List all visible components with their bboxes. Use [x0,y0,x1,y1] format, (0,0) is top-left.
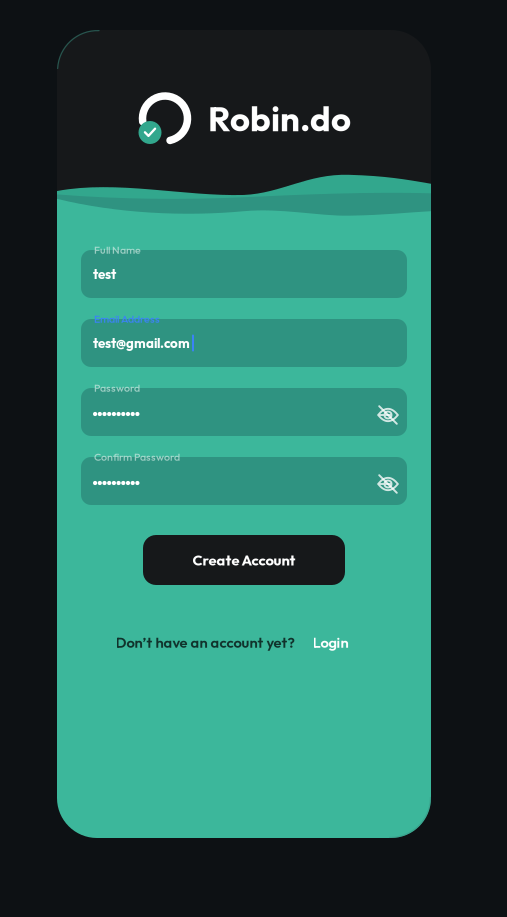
staticText: test [93,266,116,282]
staticText: test@gmail.com [93,335,190,351]
staticText: Create Account [192,551,295,569]
staticText: Password [94,381,140,394]
staticText: Confirm Password [94,450,180,463]
button[interactable]: Show password [376,401,400,423]
staticText: Don’t have an account yet? [115,633,294,651]
staticText: Login [312,633,348,651]
staticText: Email Address [94,312,160,325]
button[interactable]: Show password [376,470,400,492]
staticText: Robin.do [208,97,351,140]
button[interactable]: Create Account [143,535,345,585]
staticText: Full Name [94,243,141,256]
button[interactable]: Login [306,629,354,655]
